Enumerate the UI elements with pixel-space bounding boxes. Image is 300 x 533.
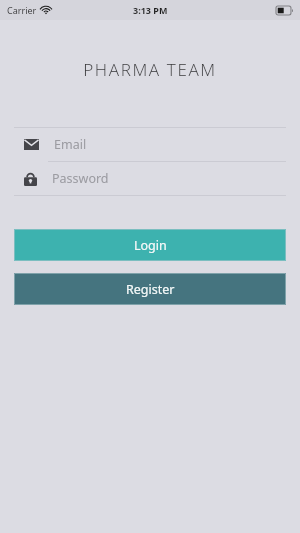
other: Email — [24, 139, 39, 150]
staticText: Email — [54, 136, 87, 153]
staticText: PHARMA TEAM — [0, 58, 300, 81]
button[interactable]: Register — [14, 273, 286, 305]
staticText: Carrier — [7, 4, 37, 16]
staticText: 3:13 PM — [133, 4, 168, 16]
button[interactable]: Password — [0, 162, 300, 195]
staticText: Login — [134, 237, 167, 254]
button[interactable]: Email — [0, 128, 300, 161]
other: Password — [24, 171, 37, 186]
staticText: Password — [52, 170, 109, 187]
staticText: Register — [126, 281, 175, 298]
button[interactable]: Login — [14, 229, 286, 261]
